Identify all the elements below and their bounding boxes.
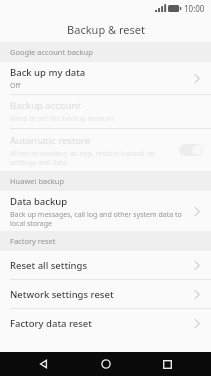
staticText: Backup & reset	[67, 22, 145, 37]
button[interactable]: Data backup	[0, 191, 211, 231]
staticText: Backup account	[10, 99, 81, 112]
staticText: Huawei backup	[10, 176, 65, 186]
button[interactable]: Home	[89, 352, 123, 376]
staticText: Back up my data	[10, 66, 86, 79]
staticText: Automatic restore	[10, 134, 91, 147]
button[interactable]: Factory data reset	[0, 309, 211, 337]
staticText: Google account backup	[10, 47, 93, 57]
button[interactable]: Back	[27, 352, 61, 376]
staticText: Data backup	[10, 195, 68, 208]
staticText: Factory reset	[10, 236, 56, 246]
staticText: Need to set the backup account	[10, 114, 115, 124]
staticText: 10:00	[184, 3, 205, 14]
staticText: Reset all settings	[10, 259, 88, 272]
button[interactable]: Backup account	[0, 95, 211, 128]
staticText: When reinstalling an app, restore backed…	[10, 149, 179, 167]
staticText: Back up messages, call log and other sys…	[10, 210, 193, 228]
staticText: Off	[10, 81, 21, 91]
staticText: Network settings reset	[10, 288, 114, 301]
button[interactable]: Network settings reset	[0, 280, 211, 308]
button[interactable]: Back up my data	[0, 62, 211, 94]
button[interactable]: Automatic restore	[0, 129, 211, 171]
button[interactable]: Recent apps	[150, 352, 184, 376]
staticText: Factory data reset	[10, 317, 92, 330]
button[interactable]: Reset all settings	[0, 251, 211, 279]
